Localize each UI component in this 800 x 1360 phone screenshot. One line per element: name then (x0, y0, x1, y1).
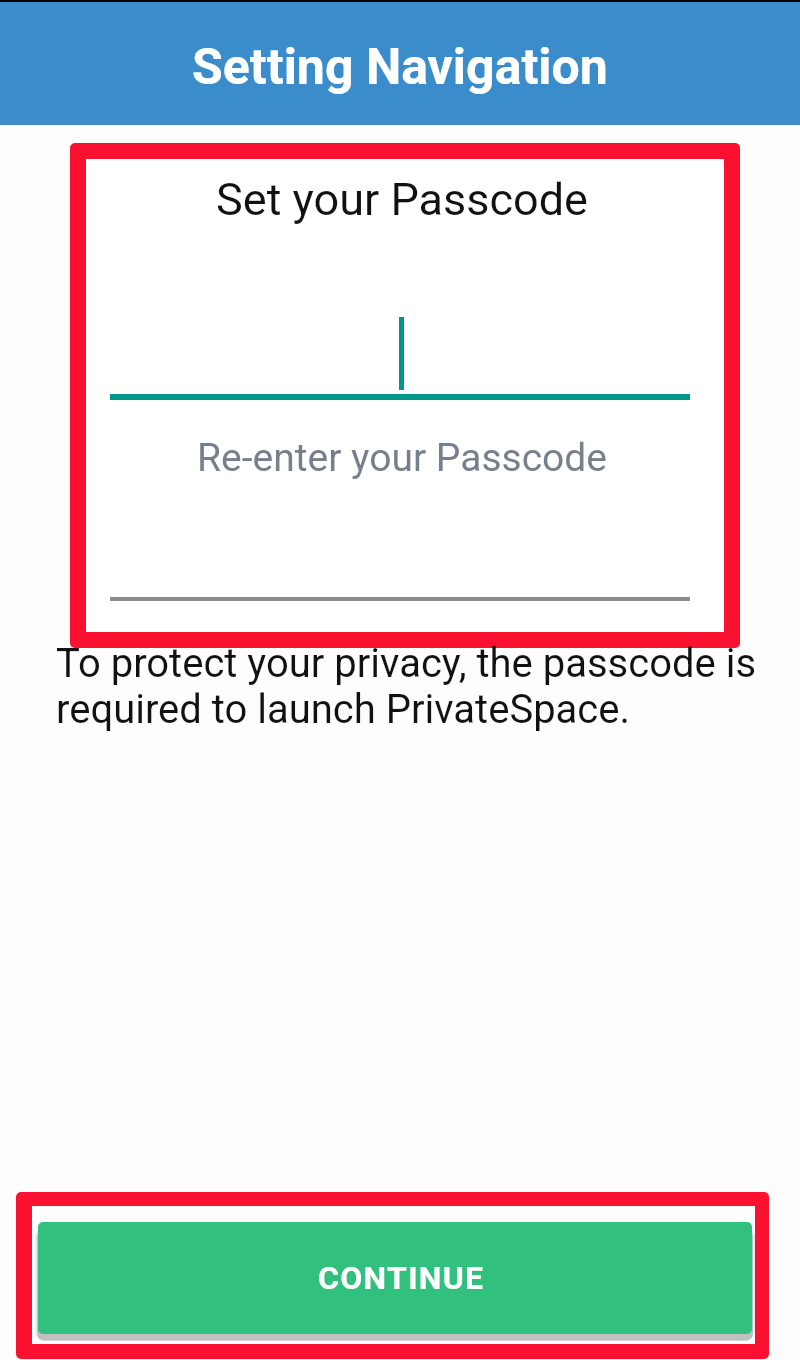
button[interactable]: CONTINUE (38, 1222, 752, 1334)
staticText: To protect your privacy, the passcode is… (56, 640, 791, 733)
staticText: Re-enter your Passcode (112, 435, 692, 481)
button[interactable]: Re-enter your Passcode (110, 421, 690, 601)
button[interactable]: Passcode input field (110, 269, 690, 400)
staticText: Set your Passcode (83, 173, 721, 226)
staticText: CONTINUE (318, 1259, 485, 1297)
staticText: Setting Navigation (192, 38, 608, 97)
button[interactable]: Setting Navigation (0, 2, 800, 125)
